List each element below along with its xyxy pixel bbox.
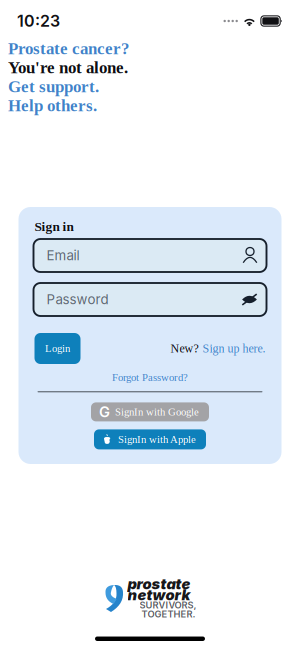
staticText: TOGETHER. — [141, 608, 195, 620]
staticText: network — [127, 586, 190, 604]
staticText: Password — [46, 291, 108, 307]
button[interactable]: G — [91, 402, 209, 421]
button[interactable]: Forgot Password? — [18, 371, 281, 384]
staticText: Email — [46, 247, 79, 263]
staticText: Forgot Password? — [112, 372, 188, 383]
staticText: Prostate cancer? — [8, 39, 129, 58]
staticText: G — [99, 403, 110, 421]
button[interactable]: New? — [170, 333, 265, 364]
staticText: You're not alone. — [8, 58, 128, 77]
staticText: SignIn with Google — [115, 406, 199, 418]
staticText: Login — [45, 343, 70, 354]
staticText: SURVIVORS, — [139, 599, 196, 611]
staticText: prostate — [127, 575, 190, 593]
staticText: Help others. — [8, 96, 97, 115]
staticText: SignIn with Apple — [118, 433, 196, 445]
staticText: 10:23 — [17, 11, 60, 31]
staticText: Sign up here. — [202, 342, 265, 355]
staticText: New? — [170, 342, 198, 355]
button[interactable]: SignIn with Apple — [94, 429, 206, 449]
button[interactable]: Login — [34, 333, 80, 364]
staticText: Sign in — [34, 219, 73, 234]
staticText: Get support. — [8, 77, 99, 96]
